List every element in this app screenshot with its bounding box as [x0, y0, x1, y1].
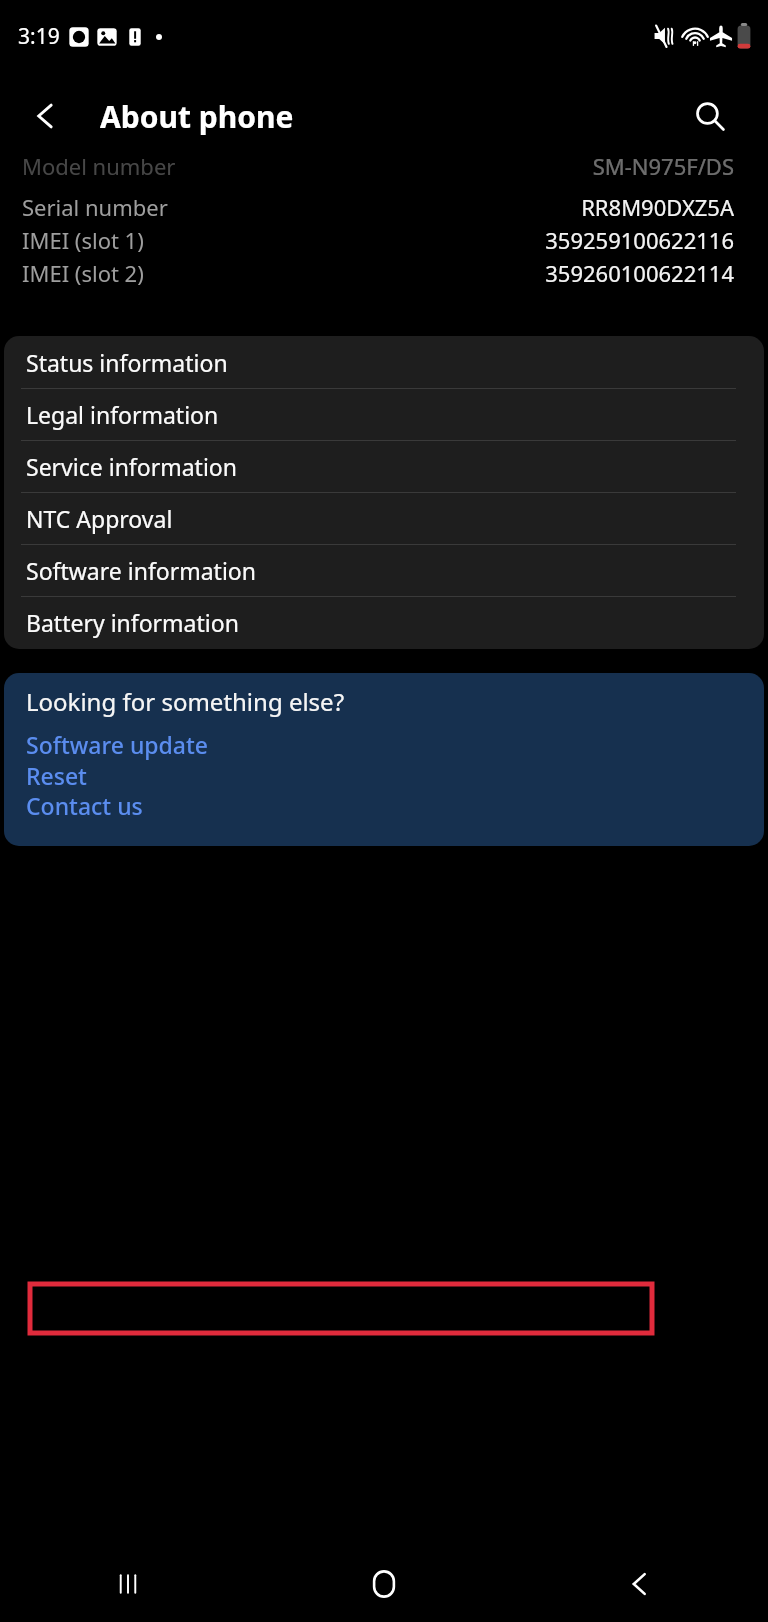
button[interactable]: Legal information [4, 389, 764, 440]
button[interactable]: NTC Approval [4, 493, 764, 544]
staticText: IMEI (slot 2) [22, 258, 144, 288]
staticText: Serial number [22, 192, 168, 222]
button[interactable]: Back [20, 90, 72, 142]
staticText: Status information [26, 347, 228, 378]
button[interactable]: Reset [4, 760, 764, 790]
staticText: Looking for something else? [26, 685, 345, 718]
button[interactable]: Status information [4, 337, 764, 388]
staticText: About phone [100, 96, 294, 137]
staticText: IMEI (slot 1) [22, 225, 144, 255]
button[interactable]: Service information [4, 441, 764, 492]
staticText: Battery information [26, 607, 239, 638]
button[interactable]: Serial number [0, 190, 768, 223]
staticText: Software update [26, 729, 208, 760]
staticText: 359259100622116 [545, 225, 734, 255]
button[interactable]: Recent apps [0, 1546, 256, 1622]
staticText: NTC Approval [26, 503, 173, 534]
button[interactable]: Back [512, 1546, 768, 1622]
button[interactable]: IMEI (slot 2) [0, 256, 768, 289]
staticText: Service information [26, 451, 237, 482]
staticText: 359260100622114 [545, 258, 734, 288]
button[interactable]: Home [256, 1546, 512, 1622]
button[interactable]: Software update [4, 729, 764, 760]
button[interactable]: Model number [0, 142, 768, 190]
staticText: SM-N975F/DS [592, 151, 734, 181]
staticText: Legal information [26, 399, 219, 430]
staticText: Model number [22, 151, 176, 181]
button[interactable]: Search [684, 90, 736, 142]
staticText: 3:19 [18, 22, 60, 51]
button[interactable]: Contact us [4, 790, 764, 820]
staticText: Software information [26, 555, 256, 586]
button[interactable]: IMEI (slot 1) [0, 223, 768, 256]
staticText: Contact us [26, 790, 143, 820]
staticText: Reset [26, 760, 87, 790]
button[interactable]: Battery information [4, 597, 764, 648]
staticText: RR8M90DXZ5A [581, 192, 734, 222]
button[interactable]: Software information [4, 545, 764, 596]
